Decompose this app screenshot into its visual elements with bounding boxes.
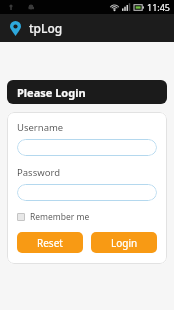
button[interactable]: Please Login [7,80,167,104]
staticText: Password [17,166,60,179]
button[interactable]: Login [91,232,157,253]
staticText: Username [17,121,64,134]
staticText: Please Login [17,85,86,100]
button[interactable]: Reset [17,232,83,253]
staticText: Reset [37,236,63,250]
staticText: Remember me [30,211,90,223]
button[interactable]: Remember me [17,211,90,223]
staticText: 11:45 [147,1,171,13]
button[interactable] [17,139,157,156]
staticText: tpLog [29,20,63,36]
staticText: Login [111,236,138,250]
button[interactable] [17,184,157,201]
